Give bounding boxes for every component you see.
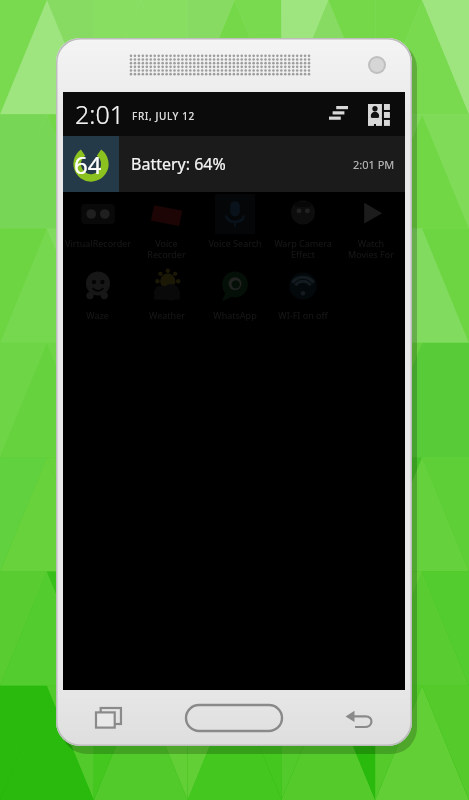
staticText: Waze	[86, 309, 109, 321]
staticText: 2:01 PM	[353, 157, 395, 172]
staticText: Voice Search	[208, 237, 262, 249]
staticText: Voice Recorder	[147, 237, 186, 260]
button[interactable]: Back	[340, 699, 378, 737]
button[interactable]: Home	[186, 705, 282, 731]
button[interactable]: Quick settings	[321, 97, 355, 131]
button[interactable]: 64	[63, 136, 405, 192]
staticText: WI-FI on off	[278, 309, 328, 321]
button[interactable]: Recent apps	[90, 699, 128, 737]
staticText: 64	[74, 148, 102, 181]
button[interactable]: Profile switcher	[361, 97, 395, 131]
staticText: FRI, JULY 12	[132, 109, 195, 123]
staticText: Weather	[149, 309, 185, 321]
staticText: VirtualRecorder	[65, 237, 131, 249]
staticText: WhatsApp	[213, 309, 257, 321]
staticText: 2:01	[75, 97, 124, 131]
staticText: Watch Movies For	[348, 237, 394, 260]
staticText: Battery: 64%	[131, 153, 226, 175]
staticText: Warp Camera Effect	[274, 237, 332, 260]
